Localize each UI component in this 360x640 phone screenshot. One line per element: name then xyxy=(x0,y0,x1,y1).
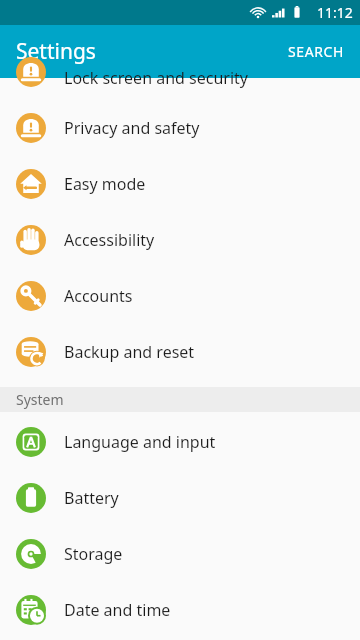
staticText: Settings xyxy=(16,37,96,66)
button[interactable]: Battery xyxy=(0,470,360,526)
staticText: Privacy and safety xyxy=(64,117,200,139)
button[interactable]: Accounts xyxy=(0,268,360,324)
button[interactable]: Date and time xyxy=(0,582,360,638)
staticText: Lock screen and security xyxy=(64,67,248,89)
staticText: Accounts xyxy=(64,285,133,307)
staticText: System xyxy=(16,390,64,409)
staticText: Easy mode xyxy=(64,173,146,195)
button[interactable]: Language and input xyxy=(0,414,360,470)
button[interactable]: Backup and reset xyxy=(0,324,360,380)
button[interactable]: Accessibility xyxy=(0,212,360,268)
staticText: Storage xyxy=(64,543,123,565)
button[interactable]: Storage xyxy=(0,526,360,582)
staticText: Battery xyxy=(64,487,119,509)
staticText: Backup and reset xyxy=(64,341,195,363)
staticText: Date and time xyxy=(64,599,171,621)
staticText: Language and input xyxy=(64,431,216,453)
button[interactable]: Privacy and safety xyxy=(0,100,360,156)
button[interactable]: Easy mode xyxy=(0,156,360,212)
staticText: SEARCH xyxy=(288,42,344,61)
staticText: Accessibility xyxy=(64,229,155,251)
button[interactable]: Lock screen and security xyxy=(0,78,360,100)
staticText: 11:12 xyxy=(317,3,353,22)
button[interactable]: SEARCH xyxy=(272,30,360,73)
